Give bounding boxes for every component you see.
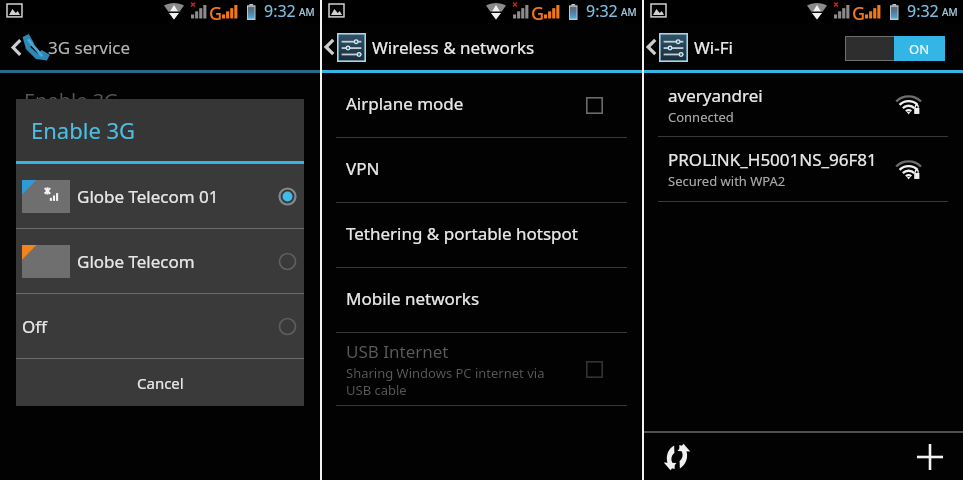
staticText: G	[531, 1, 545, 25]
button[interactable]: Cancel	[16, 359, 304, 406]
staticText: 3G service	[48, 36, 131, 59]
staticText: USB Internet	[346, 340, 449, 363]
button[interactable]: PROLINK_H5001NS_96F81	[644, 137, 963, 201]
staticText: Wi-Fi	[694, 36, 733, 59]
button[interactable]: USB Internet	[322, 333, 642, 405]
staticText: G	[852, 1, 866, 25]
staticText: Tethering & portable hotspot	[346, 222, 603, 245]
staticText: Globe Telecom 01	[77, 185, 278, 208]
staticText: Sharing Windows PC internet via USB cabl…	[346, 364, 545, 399]
staticText: Wireless & networks	[372, 36, 535, 59]
staticText: 9:32	[586, 0, 618, 21]
staticText: Connected	[668, 108, 734, 126]
staticText: Globe Telecom	[77, 250, 278, 273]
button[interactable]: averyandrei	[644, 73, 963, 136]
staticText: Cancel	[137, 373, 184, 393]
button[interactable]: Globe Telecom	[16, 229, 304, 293]
button[interactable]: Scan	[644, 433, 710, 480]
button[interactable]: 3G service	[0, 24, 320, 70]
staticText: PROLINK_H5001NS_96F81	[668, 148, 877, 171]
staticText: G	[209, 1, 223, 25]
button[interactable]: Off	[16, 294, 304, 358]
button[interactable]: Wireless & networks	[322, 24, 582, 70]
staticText: AM	[621, 5, 637, 19]
staticText: Mobile networks	[346, 287, 603, 310]
staticText: AM	[299, 5, 315, 19]
staticText: 9:32	[264, 0, 296, 21]
button[interactable]: ON	[845, 36, 945, 61]
staticText: Secured with WPA2	[668, 172, 786, 190]
button[interactable]: Add network	[897, 433, 963, 480]
staticText: Enable 3G	[24, 87, 119, 114]
staticText: 9:32	[907, 0, 939, 21]
button[interactable]: Tethering & portable hotspot	[322, 203, 642, 267]
button[interactable]: VPN	[322, 138, 642, 202]
staticText: Enable 3G	[31, 115, 136, 145]
button[interactable]: Airplane mode	[322, 73, 642, 137]
staticText: VPN	[346, 157, 603, 180]
button[interactable]: Globe Telecom 01	[16, 164, 304, 228]
staticText: Airplane mode	[346, 92, 586, 115]
staticText: averyandrei	[668, 84, 763, 107]
button[interactable]: Wi-Fi	[644, 24, 804, 70]
staticText: Off	[22, 315, 278, 338]
staticText: ON	[909, 40, 930, 58]
button[interactable]: Mobile networks	[322, 268, 642, 332]
staticText: AM	[942, 5, 958, 19]
